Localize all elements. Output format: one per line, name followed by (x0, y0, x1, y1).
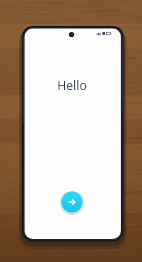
staticText: Hello (57, 77, 87, 94)
button[interactable]: Next (61, 191, 82, 212)
